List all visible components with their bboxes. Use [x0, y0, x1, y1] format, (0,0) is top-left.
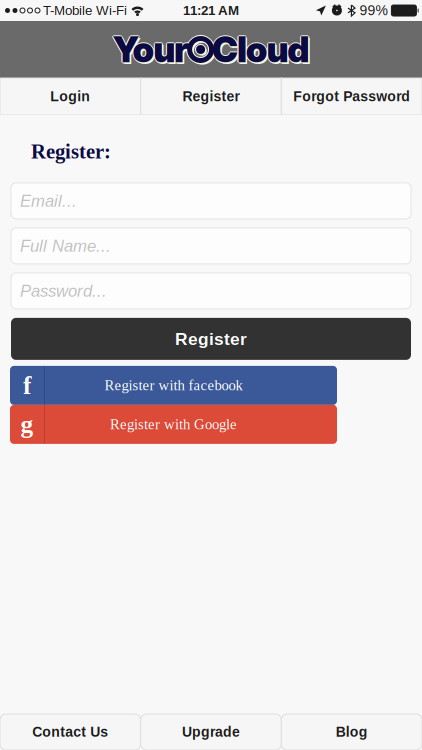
button[interactable]: Register with facebook [10, 366, 337, 405]
button[interactable]: Register with Google [10, 405, 337, 444]
staticText: Full Name... [20, 237, 111, 255]
button[interactable]: Forgot Password [281, 78, 422, 115]
staticText: Blog [336, 724, 368, 740]
staticText: Login [50, 89, 90, 104]
staticText: T-Mobile Wi-Fi [40, 3, 131, 18]
staticText: Register: [31, 140, 111, 163]
staticText: Your [113, 27, 189, 70]
button[interactable]: Email... [11, 183, 411, 219]
staticText: Forgot Password [293, 89, 410, 104]
staticText: Register [175, 329, 247, 349]
staticText: Cloud [214, 30, 311, 73]
staticText: Email... [20, 192, 77, 210]
staticText: Register with facebook [104, 377, 242, 393]
staticText: Upgrade [182, 724, 240, 740]
staticText: Register with Google [110, 416, 237, 432]
staticText: Cloud [212, 27, 309, 70]
button[interactable]: Register [11, 318, 411, 360]
staticText: Your [114, 30, 191, 73]
staticText: 99% [355, 3, 391, 18]
staticText: Your [114, 28, 190, 71]
staticText: 11:21 AM [183, 3, 239, 18]
button[interactable]: Contact Us [0, 714, 141, 750]
staticText: Cloud [213, 28, 310, 71]
button[interactable]: Upgrade [141, 714, 281, 750]
staticText: Register [182, 89, 239, 104]
staticText: g [20, 410, 33, 438]
staticText: Your [113, 28, 189, 71]
staticText: Your [113, 29, 189, 72]
staticText: Cloud [211, 28, 308, 71]
button[interactable]: Full Name... [11, 228, 411, 264]
staticText: Cloud [212, 28, 309, 71]
staticText: Cloud [212, 29, 309, 72]
button[interactable]: Login [0, 78, 141, 115]
staticText: Password... [20, 282, 107, 300]
staticText: f [23, 371, 31, 399]
staticText: Contact Us [32, 724, 108, 740]
button[interactable]: Blog [281, 714, 422, 750]
staticText: Your [112, 28, 188, 71]
button[interactable]: Register [141, 78, 281, 115]
button[interactable]: Password... [11, 273, 411, 309]
